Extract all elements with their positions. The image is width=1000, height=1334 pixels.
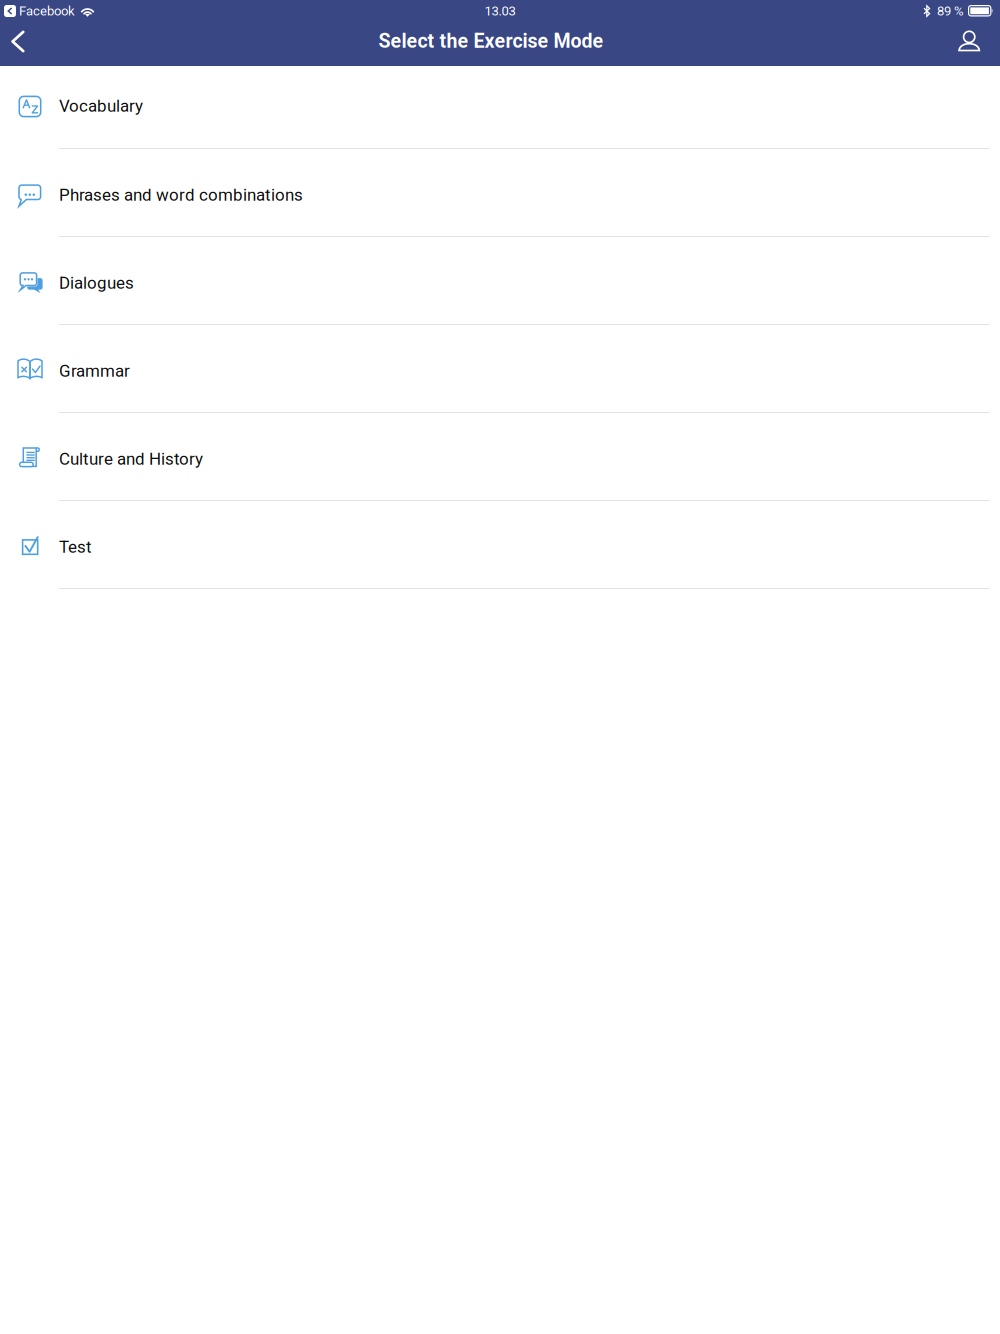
- staticText: 89 %: [937, 3, 964, 19]
- button[interactable]: Profile: [948, 22, 990, 66]
- staticText: Grammar: [59, 361, 130, 381]
- button[interactable]: Test: [0, 501, 1000, 589]
- button[interactable]: Grammar: [0, 325, 1000, 413]
- staticText: Vocabulary: [59, 96, 143, 116]
- button[interactable]: Culture and History: [0, 413, 1000, 501]
- staticText: Facebook: [19, 3, 75, 19]
- button[interactable]: Dialogues: [0, 237, 1000, 325]
- staticText: Select the Exercise Mode: [378, 29, 603, 52]
- staticText: Phrases and word combinations: [59, 185, 303, 205]
- staticText: Test: [59, 537, 92, 557]
- staticText: Dialogues: [59, 273, 134, 293]
- staticText: Culture and History: [59, 449, 203, 469]
- staticText: 13.03: [484, 3, 515, 19]
- button[interactable]: Vocabulary: [0, 66, 1000, 149]
- button[interactable]: Phrases and word combinations: [0, 149, 1000, 237]
- button[interactable]: Back: [0, 22, 38, 66]
